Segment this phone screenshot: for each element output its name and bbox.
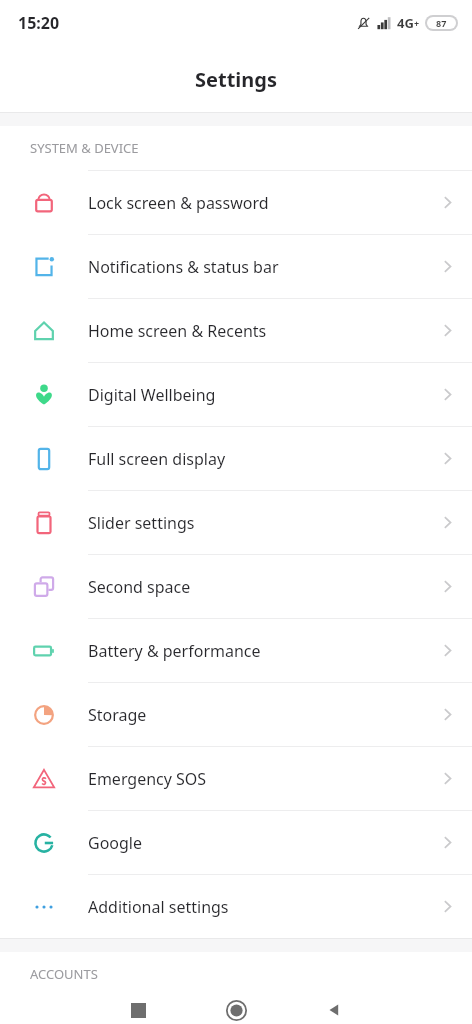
staticText: 87 bbox=[436, 17, 447, 29]
button[interactable]: Recents bbox=[89, 996, 187, 1024]
staticText: Digital Wellbeing bbox=[88, 384, 422, 406]
button[interactable]: Google bbox=[0, 811, 472, 874]
staticText: Full screen display bbox=[88, 448, 422, 470]
button[interactable]: Home bbox=[187, 996, 285, 1024]
staticText: Additional settings bbox=[88, 896, 422, 918]
button[interactable]: Back bbox=[285, 996, 383, 1024]
staticText: Home screen & Recents bbox=[88, 320, 422, 342]
staticText: Google bbox=[88, 832, 422, 854]
button[interactable]: Full screen display bbox=[0, 427, 472, 490]
staticText: ACCOUNTS bbox=[30, 965, 98, 983]
button[interactable]: Battery & performance bbox=[0, 619, 472, 682]
staticText: + bbox=[414, 17, 420, 29]
button[interactable]: Digital Wellbeing bbox=[0, 363, 472, 426]
button[interactable]: Storage bbox=[0, 683, 472, 746]
staticText: SYSTEM & DEVICE bbox=[30, 139, 139, 157]
staticText: Notifications & status bar bbox=[88, 256, 422, 278]
staticText: Storage bbox=[88, 704, 422, 726]
staticText: Emergency SOS bbox=[88, 768, 422, 790]
button[interactable]: Second space bbox=[0, 555, 472, 618]
staticText: Settings bbox=[195, 66, 277, 93]
staticText: 15:20 bbox=[18, 12, 60, 34]
staticText: Battery & performance bbox=[88, 640, 422, 662]
staticText: Second space bbox=[88, 576, 422, 598]
button[interactable]: Slider settings bbox=[0, 491, 472, 554]
button[interactable]: Additional settings bbox=[0, 875, 472, 938]
button[interactable]: Notifications & status bar bbox=[0, 235, 472, 298]
button[interactable]: Lock screen & password bbox=[0, 171, 472, 234]
staticText: 4G bbox=[397, 14, 414, 32]
staticText: Lock screen & password bbox=[88, 192, 422, 214]
button[interactable]: Emergency SOS bbox=[0, 747, 472, 810]
staticText: Slider settings bbox=[88, 512, 422, 534]
button[interactable]: Home screen & Recents bbox=[0, 299, 472, 362]
